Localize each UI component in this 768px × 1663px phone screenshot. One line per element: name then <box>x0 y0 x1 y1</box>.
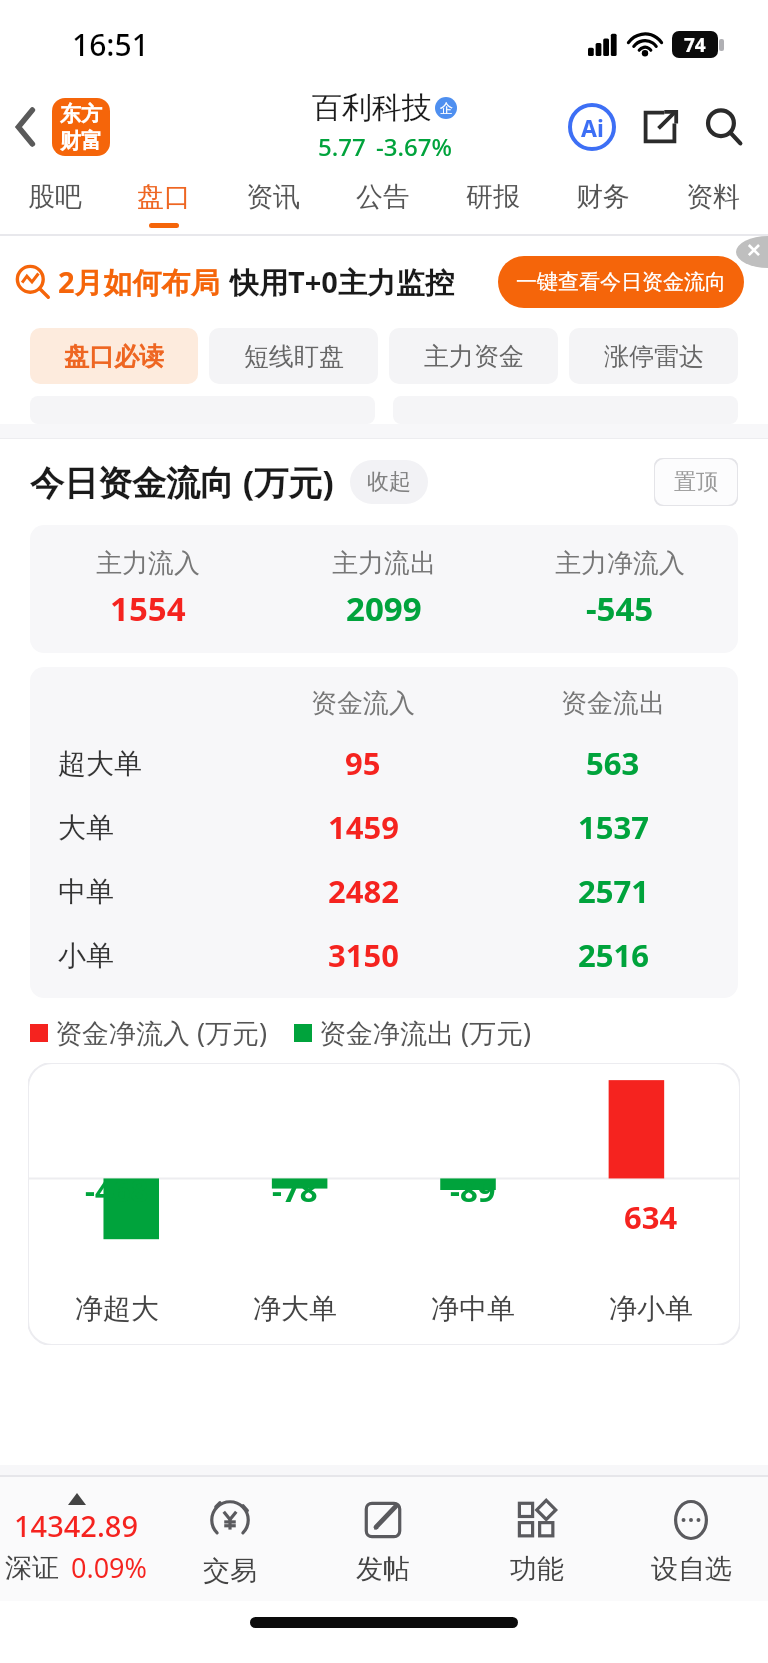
staticText: 563 <box>586 742 640 784</box>
staticText: 2516 <box>578 934 649 976</box>
staticText: 2482 <box>328 870 399 912</box>
staticText: 短线盯盘 <box>244 341 344 372</box>
staticText: 盘口 <box>137 180 191 214</box>
staticText: 资料 <box>686 180 740 214</box>
button[interactable]: 功能 <box>460 1477 614 1601</box>
staticText: 中单 <box>58 874 114 909</box>
button[interactable]: 资金流入 <box>30 667 738 998</box>
staticText: 大单 <box>58 810 114 845</box>
staticText: 2月如何布局 <box>58 262 220 302</box>
staticText: 1554 <box>110 586 186 631</box>
button[interactable]: -468 <box>28 1063 740 1345</box>
staticText: 财富 <box>60 128 102 154</box>
staticText: -89 <box>450 1169 496 1211</box>
button[interactable]: 2月如何布局 <box>16 236 744 328</box>
button[interactable]: 公告 <box>328 170 438 234</box>
button[interactable]: 研报 <box>438 170 548 234</box>
staticText: 资金净流入 (万元) <box>55 1014 268 1051</box>
staticText: 超大单 <box>58 746 142 781</box>
staticText: 主力流入 <box>96 547 200 580</box>
staticText: 净中单 <box>431 1291 515 1326</box>
staticText: 交易 <box>203 1554 257 1588</box>
button[interactable]: 交易 <box>153 1477 306 1601</box>
button[interactable]: 置顶 <box>654 458 738 506</box>
staticText: 主力流出 <box>332 547 436 580</box>
staticText: 95 <box>345 742 381 784</box>
staticText: 净小单 <box>609 1291 693 1326</box>
staticText: 股吧 <box>28 180 82 214</box>
button[interactable]: 东方财富 <box>52 98 110 156</box>
staticText: 设自选 <box>651 1552 732 1586</box>
staticText: 公告 <box>356 180 410 214</box>
button[interactable]: 财务 <box>548 170 658 234</box>
button[interactable]: Close ad <box>736 236 768 268</box>
button[interactable]: 涨停雷达 <box>569 328 738 384</box>
staticText: -468 <box>85 1169 149 1211</box>
staticText: 0.09% <box>71 1549 148 1586</box>
button[interactable]: 收起 <box>350 460 428 504</box>
staticText: 涨停雷达 <box>604 341 704 372</box>
staticText: 1537 <box>578 806 649 848</box>
staticText: Ai <box>581 112 604 143</box>
staticText: 资金流出 <box>561 687 665 720</box>
staticText: 3150 <box>328 934 399 976</box>
staticText: 资金净流出 (万元) <box>319 1014 532 1051</box>
staticText: -3.67% <box>376 130 452 163</box>
button[interactable]: 资料 <box>658 170 768 234</box>
staticText: 14342.89 <box>14 1506 139 1545</box>
staticText: 研报 <box>466 180 520 214</box>
staticText: 16:51 <box>72 24 149 65</box>
staticText: 2571 <box>578 870 649 912</box>
staticText: 2099 <box>346 586 422 631</box>
button[interactable]: 资讯 <box>218 170 328 234</box>
staticText: 一键查看今日资金流向 <box>516 269 726 295</box>
staticText: 置顶 <box>674 468 718 496</box>
staticText: 634 <box>624 1196 678 1238</box>
button[interactable]: 发帖 <box>306 1477 460 1601</box>
staticText: 功能 <box>510 1552 564 1586</box>
button[interactable]: 短线盯盘 <box>209 328 378 384</box>
staticText: 5.77 <box>318 130 366 163</box>
staticText: -78 <box>272 1169 318 1211</box>
button[interactable]: Share <box>632 99 688 155</box>
button[interactable]: AI assistant <box>564 99 620 155</box>
staticText: 百利科技 <box>312 89 432 127</box>
staticText: 深证 <box>5 1551 59 1585</box>
staticText: 1459 <box>328 806 399 848</box>
staticText: 东方 <box>60 101 102 127</box>
button[interactable]: 主力流入 <box>30 525 738 653</box>
button[interactable]: Back <box>0 101 52 153</box>
button[interactable]: 一键查看今日资金流向 <box>498 256 744 308</box>
staticText: 小单 <box>58 938 114 973</box>
staticText: 收起 <box>367 468 411 496</box>
staticText: 今日资金流向 (万元) <box>30 459 334 505</box>
staticText: 主力资金 <box>424 341 524 372</box>
staticText: 发帖 <box>356 1552 410 1586</box>
button[interactable]: 盘口 <box>109 170 218 234</box>
staticText: -545 <box>586 586 654 631</box>
staticText: 企 <box>440 100 453 116</box>
button[interactable]: 设自选 <box>614 1477 768 1601</box>
staticText: 主力净流入 <box>555 547 685 580</box>
staticText: 资讯 <box>246 180 300 214</box>
staticText: 盘口必读 <box>64 341 164 372</box>
staticText: 资金流入 <box>311 687 415 720</box>
staticText: 快用T+0主力监控 <box>230 262 454 302</box>
staticText: 净大单 <box>253 1291 337 1326</box>
button[interactable]: 主力资金 <box>389 328 558 384</box>
button[interactable]: Search <box>696 99 752 155</box>
staticText: 财务 <box>576 180 630 214</box>
staticText: 净超大 <box>75 1291 159 1326</box>
button[interactable]: 股吧 <box>0 170 109 234</box>
staticText: 74 <box>684 32 706 58</box>
button[interactable]: 14342.89 <box>0 1477 153 1601</box>
button[interactable]: 盘口必读 <box>30 328 198 384</box>
